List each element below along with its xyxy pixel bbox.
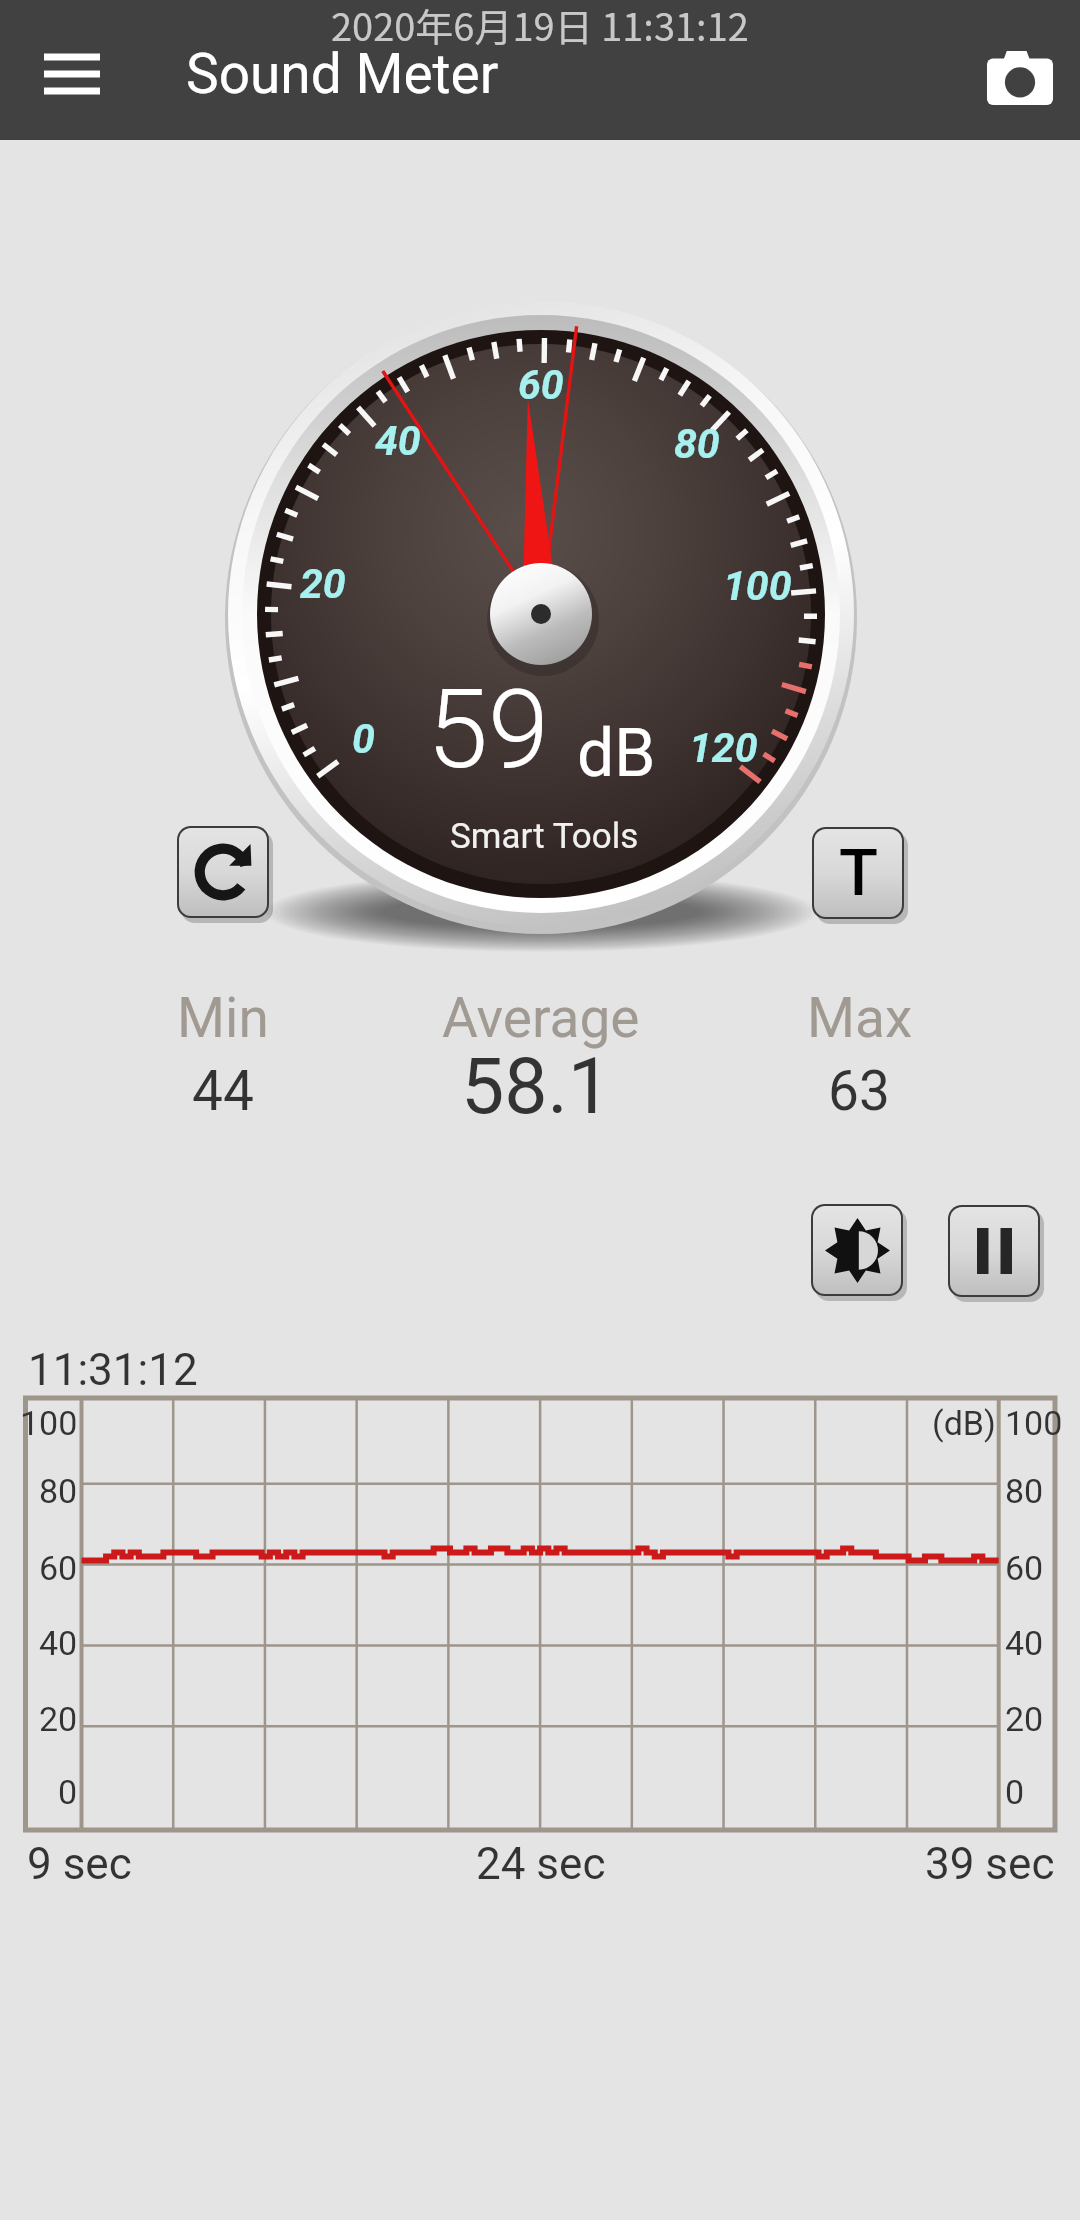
staticText: 60 <box>518 361 564 409</box>
staticText: 24 sec <box>476 1838 606 1890</box>
staticText: (dB) <box>932 1403 996 1443</box>
staticText: 100 <box>723 562 792 610</box>
staticText: 60 <box>39 1548 78 1588</box>
staticText: 59 <box>427 665 550 794</box>
staticText: 60 <box>1005 1548 1044 1588</box>
staticText: 58.1 <box>461 1042 612 1132</box>
staticText: 40 <box>375 417 421 465</box>
staticText: dB <box>577 715 656 792</box>
staticText: 80 <box>1005 1471 1044 1511</box>
staticText: 0 <box>58 1772 78 1812</box>
staticText: 63 <box>828 1059 890 1123</box>
staticText: 40 <box>39 1623 78 1663</box>
button[interactable]: Camera <box>970 28 1070 128</box>
button[interactable]: Menu <box>22 38 122 110</box>
staticText: 100 <box>20 1403 78 1443</box>
staticText: 20 <box>1005 1699 1044 1739</box>
staticText: Sound Meter <box>186 42 499 106</box>
staticText: 120 <box>689 724 758 772</box>
staticText: Smart Tools <box>450 816 639 857</box>
staticText: 40 <box>1005 1623 1044 1663</box>
button[interactable]: Text <box>814 829 902 917</box>
staticText: 39 sec <box>925 1838 1055 1890</box>
button[interactable]: Pause <box>950 1207 1038 1295</box>
staticText: 80 <box>674 420 720 468</box>
staticText: 11:31:12 <box>28 1344 198 1396</box>
button[interactable]: Brightness <box>813 1206 901 1294</box>
staticText: T <box>839 836 878 911</box>
staticText: 20 <box>39 1699 78 1739</box>
staticText: Average <box>442 986 640 1050</box>
staticText: Max <box>807 986 913 1050</box>
staticText: 2020年6月19日 11:31:12 <box>331 0 749 52</box>
staticText: 0 <box>1005 1772 1025 1812</box>
staticText: Min <box>177 986 269 1050</box>
staticText: 44 <box>192 1059 254 1123</box>
button[interactable]: Refresh <box>179 828 267 916</box>
staticText: 80 <box>39 1471 78 1511</box>
staticText: 20 <box>300 560 346 608</box>
staticText: 9 sec <box>27 1838 132 1890</box>
staticText: 100 <box>1005 1403 1063 1443</box>
staticText: 0 <box>352 715 375 763</box>
